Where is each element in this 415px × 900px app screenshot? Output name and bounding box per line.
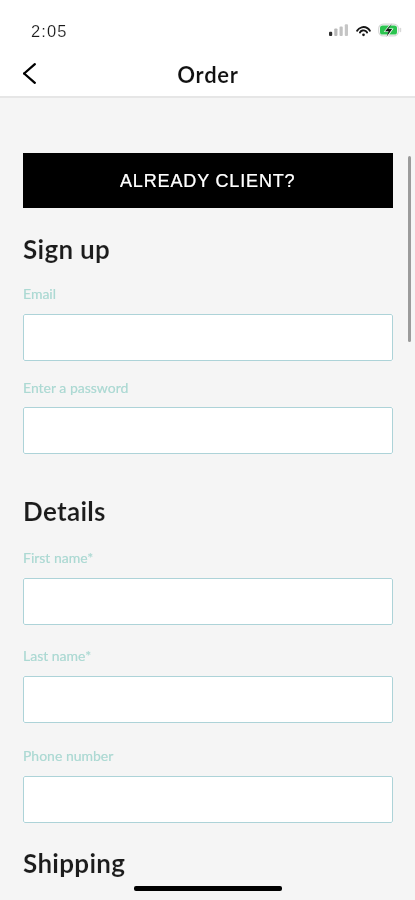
button[interactable] <box>23 676 393 723</box>
staticText: First name* <box>23 549 94 566</box>
button[interactable]: Back <box>5 49 53 97</box>
staticText: Details <box>23 495 106 526</box>
button[interactable]: ALREADY CLIENT? <box>23 153 393 208</box>
button[interactable] <box>23 776 393 823</box>
staticText: Shipping <box>23 847 126 878</box>
staticText: Phone number <box>23 747 114 764</box>
staticText: Sign up <box>23 233 111 264</box>
button[interactable] <box>23 578 393 625</box>
button[interactable] <box>23 314 393 361</box>
staticText: Order <box>177 61 239 87</box>
staticText: 2:05 <box>31 22 68 40</box>
button[interactable] <box>23 407 393 454</box>
staticText: ALREADY CLIENT? <box>120 171 296 191</box>
staticText: Enter a password <box>23 379 129 396</box>
staticText: Last name* <box>23 647 92 664</box>
staticText: Email <box>23 285 57 302</box>
